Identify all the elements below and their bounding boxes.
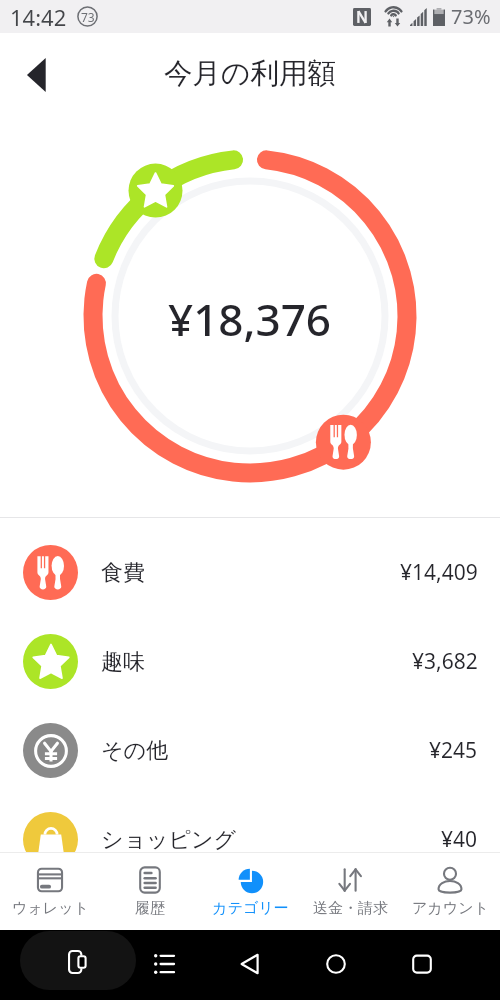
button[interactable]: Menu (143, 943, 185, 985)
staticText: ショッピング (101, 826, 237, 854)
staticText: 14:42 (10, 2, 67, 32)
staticText: ¥245 (429, 736, 478, 765)
staticText: 今月の利用額 (164, 56, 336, 92)
button[interactable]: Overview (401, 943, 443, 985)
button[interactable]: Back (229, 943, 271, 985)
staticText: 73% (451, 3, 491, 30)
staticText: 食費 (101, 559, 145, 587)
staticText: ¥14,409 (400, 558, 478, 587)
staticText: ¥40 (441, 825, 478, 854)
button[interactable]: ウォレット (0, 853, 100, 930)
staticText: ¥18,376 (168, 289, 332, 349)
button[interactable]: Home (315, 943, 357, 985)
button[interactable]: カテゴリー (200, 853, 300, 930)
staticText: ウォレット (12, 899, 89, 918)
staticText: 履歴 (135, 899, 165, 918)
staticText: カテゴリー (212, 899, 289, 918)
button[interactable]: Split screen (20, 931, 136, 990)
staticText: アカウント (412, 899, 489, 918)
button[interactable]: 趣味 (0, 617, 500, 706)
button[interactable]: 履歴 (100, 853, 200, 930)
button[interactable]: その他 (0, 706, 500, 795)
staticText: その他 (101, 737, 169, 765)
staticText: 趣味 (101, 648, 145, 676)
button[interactable]: アカウント (400, 853, 500, 930)
button[interactable]: 送金・請求 (300, 853, 400, 930)
staticText: 送金・請求 (313, 899, 388, 918)
button[interactable]: ショッピング (0, 795, 500, 884)
button[interactable]: 食費 (0, 528, 500, 617)
button[interactable]: Back (12, 49, 64, 101)
staticText: 73 (81, 9, 95, 25)
staticText: ¥3,682 (412, 647, 478, 676)
